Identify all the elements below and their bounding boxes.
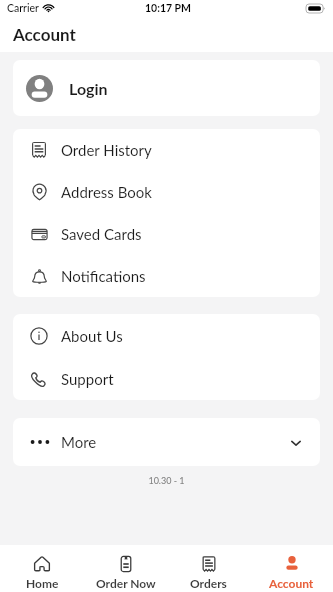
- staticText: 10.30 - 1: [0, 475, 333, 486]
- staticText: Order Now: [96, 576, 156, 590]
- button[interactable]: Orders: [167, 545, 250, 592]
- button[interactable]: Saved Cards: [13, 213, 320, 255]
- button[interactable]: Notifications: [13, 255, 320, 297]
- staticText: 10:17 PM: [145, 2, 192, 15]
- button[interactable]: Account: [250, 545, 333, 592]
- staticText: More: [61, 433, 97, 451]
- staticText: Login: [69, 79, 108, 98]
- staticText: Order History: [61, 141, 152, 159]
- button[interactable]: Home: [0, 545, 84, 592]
- staticText: Support: [61, 370, 114, 388]
- staticText: About Us: [61, 327, 123, 345]
- button[interactable]: About Us: [13, 314, 320, 357]
- button[interactable]: Support: [13, 357, 320, 400]
- staticText: Saved Cards: [61, 225, 142, 243]
- button[interactable]: More: [13, 418, 320, 466]
- staticText: Account: [269, 576, 314, 590]
- staticText: Carrier: [7, 2, 39, 15]
- staticText: Account: [13, 24, 76, 44]
- staticText: Home: [26, 576, 59, 590]
- staticText: Address Book: [61, 183, 152, 201]
- button[interactable]: Login: [13, 60, 320, 116]
- staticText: Orders: [190, 576, 227, 590]
- staticText: Notifications: [61, 267, 146, 285]
- button[interactable]: Order Now: [84, 545, 167, 592]
- button[interactable]: Address Book: [13, 171, 320, 213]
- button[interactable]: Order History: [13, 129, 320, 171]
